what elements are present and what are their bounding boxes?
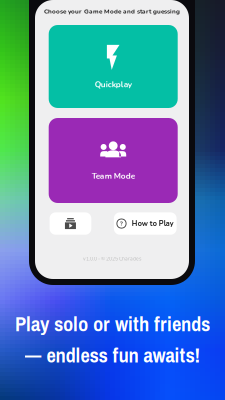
button[interactable]: Quickplay <box>49 25 178 108</box>
staticText: Choose your Game Mode and start guessing <box>44 7 180 16</box>
button[interactable]: Game library <box>50 212 91 235</box>
staticText: Play solo or with friends <box>15 310 210 338</box>
staticText: ? <box>120 219 123 228</box>
button[interactable]: ? <box>114 212 177 235</box>
button[interactable]: Team Mode <box>49 118 178 203</box>
staticText: — endless fun awaits! <box>24 341 200 369</box>
staticText: Team Mode <box>92 170 135 182</box>
staticText: Quickplay <box>95 79 132 90</box>
staticText: v1.0.0 - © 2025 Charades <box>83 255 141 262</box>
staticText: How to Play <box>132 219 174 228</box>
